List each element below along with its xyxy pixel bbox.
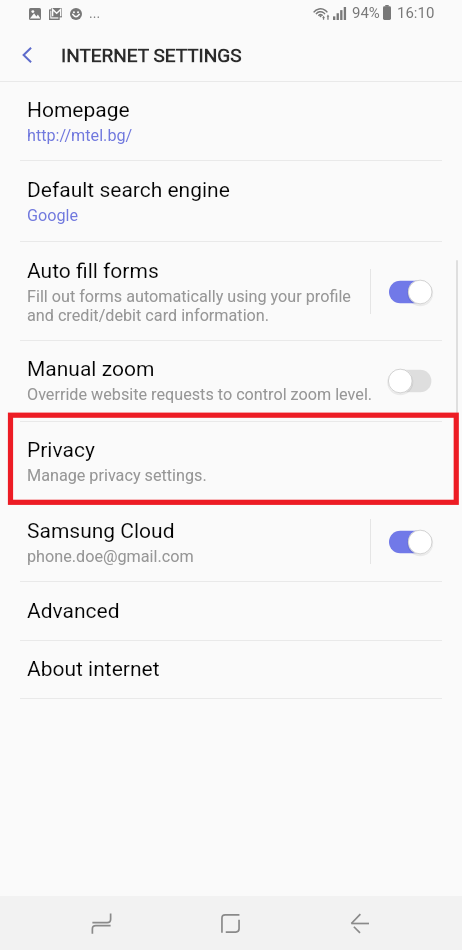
button[interactable]: Advanced (0, 582, 462, 641)
button[interactable]: Navigate up (5, 32, 51, 78)
staticText: 94% (352, 4, 380, 22)
staticText: Manual zoom (27, 357, 155, 382)
button[interactable]: Recent apps (74, 896, 128, 950)
staticText: Samsung Cloud (27, 519, 175, 544)
button[interactable]: Samsung Cloud (0, 502, 462, 581)
staticText: INTERNET SETTINGS (61, 44, 242, 66)
button[interactable]: Privacy (0, 421, 462, 502)
staticText: Homepage (27, 98, 130, 123)
staticText: About internet (27, 657, 160, 682)
staticText: Privacy (27, 438, 95, 463)
staticText: Default search engine (27, 178, 230, 203)
button[interactable]: Manual zoom off (371, 340, 462, 421)
staticText: Override website requests to control zoo… (27, 385, 373, 404)
staticText: Advanced (27, 599, 120, 624)
button[interactable]: Homepage (0, 81, 462, 160)
staticText: Auto fill forms (27, 259, 159, 284)
staticText: Fill out forms automatically using your … (27, 287, 351, 325)
staticText: Google (27, 206, 79, 225)
staticText: phone.doe@gmail.com (27, 547, 194, 566)
button[interactable]: Auto fill forms (0, 242, 462, 341)
button[interactable]: Samsung Cloud on (371, 502, 462, 581)
staticText: Manage privacy settings. (27, 466, 207, 485)
staticText: ... (89, 5, 101, 21)
staticText: http://mtel.bg/ (27, 126, 133, 145)
button[interactable]: Home (203, 896, 257, 950)
button[interactable]: Back (333, 896, 387, 950)
button[interactable]: Default search engine (0, 161, 462, 242)
staticText: 16:10 (397, 4, 435, 22)
button[interactable]: Auto fill forms on (371, 242, 462, 341)
button[interactable]: About internet (0, 640, 462, 698)
button[interactable]: Manual zoom (0, 340, 462, 421)
